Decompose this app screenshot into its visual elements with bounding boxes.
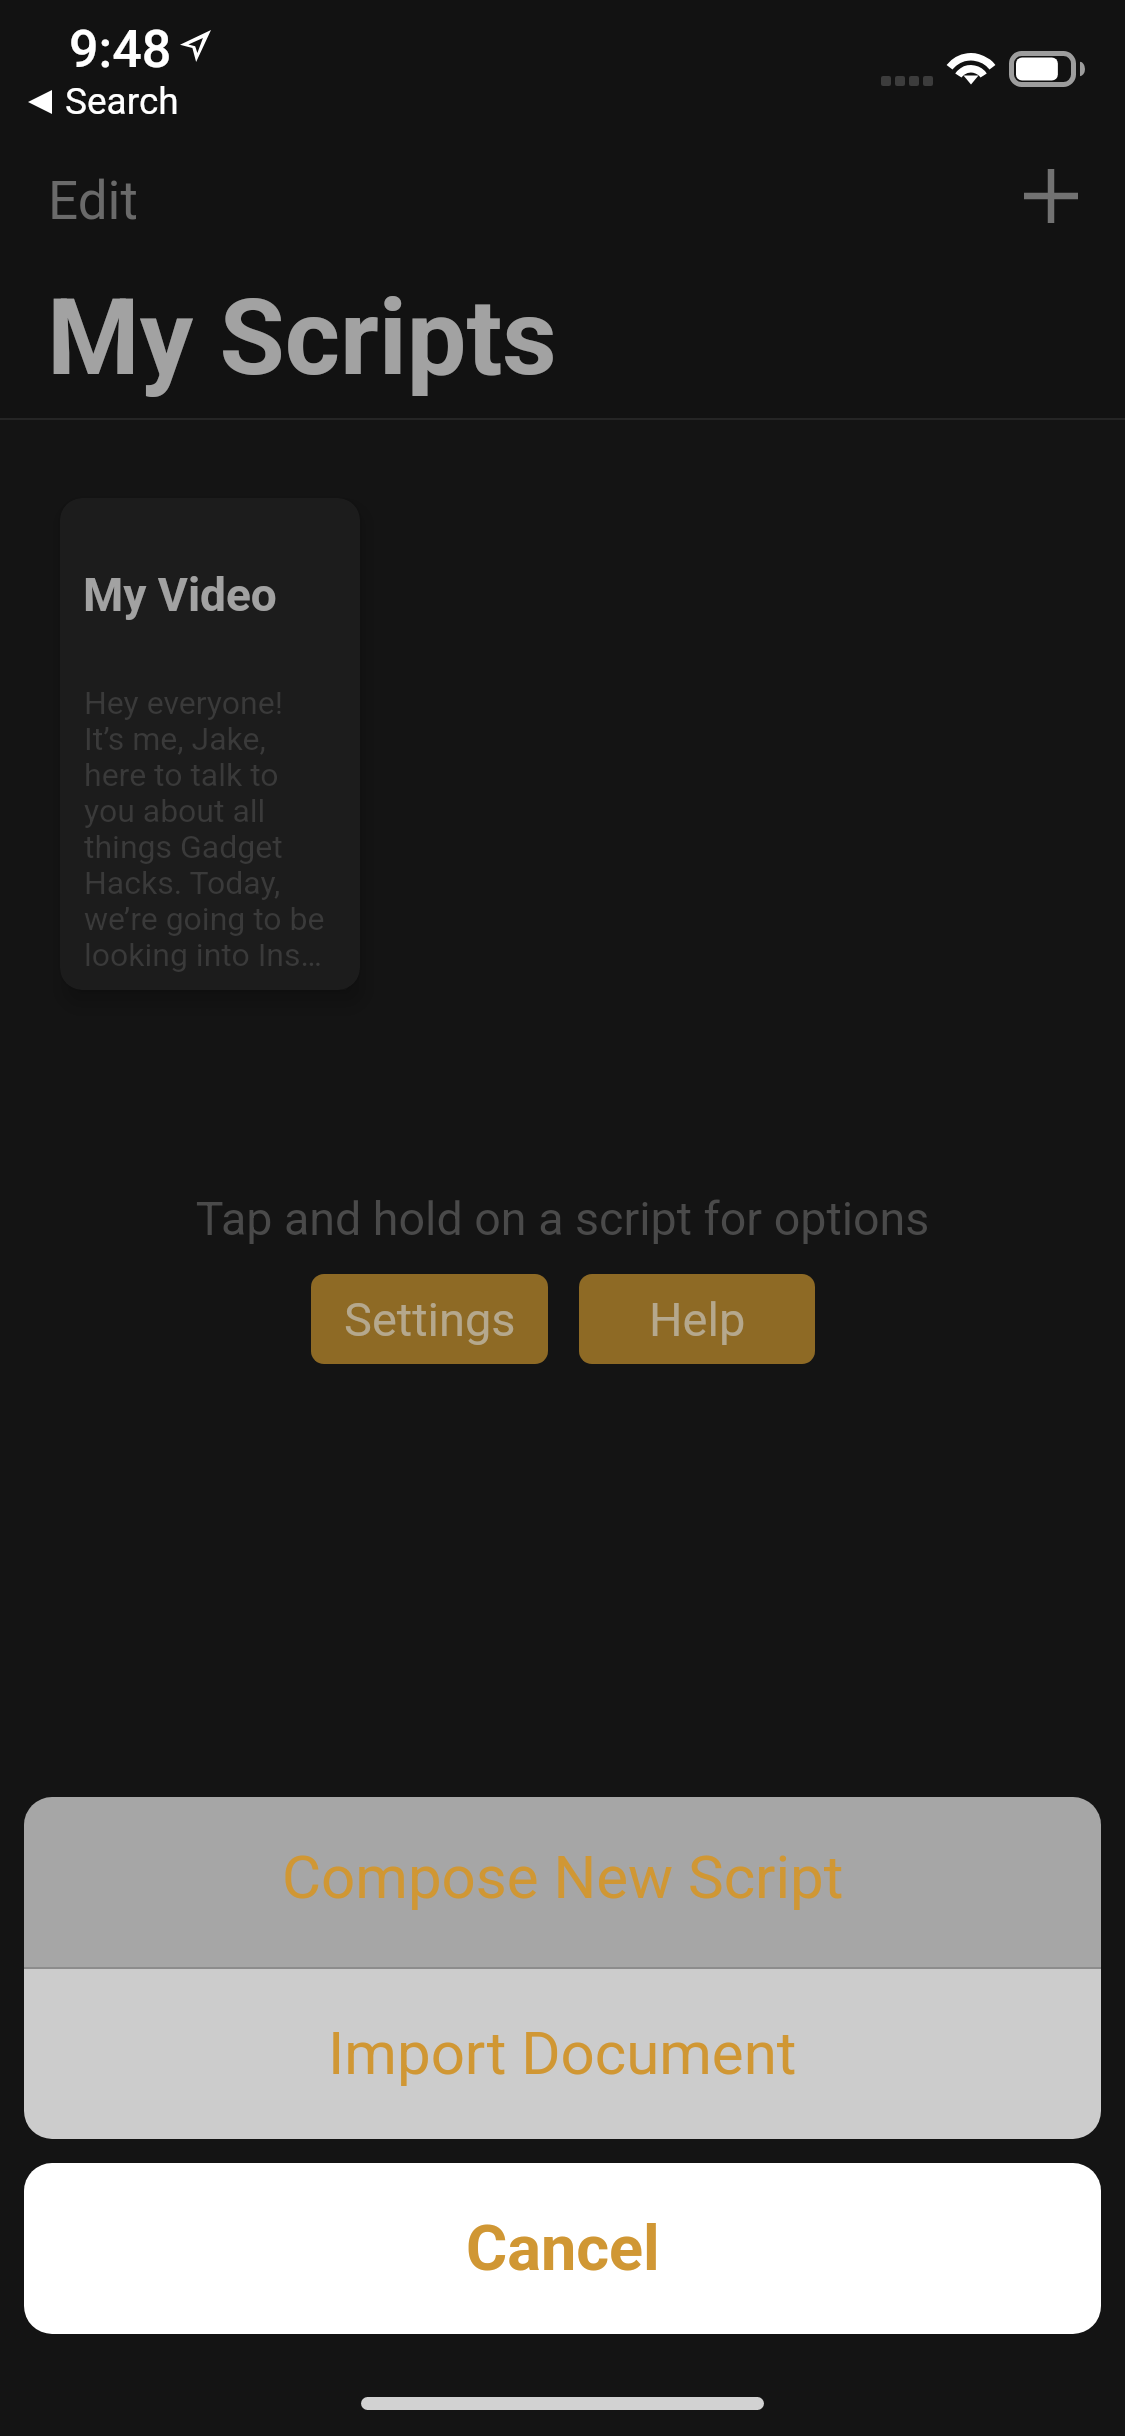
staticText: Import Document (328, 2018, 797, 2088)
staticText: Tap and hold on a script for options (0, 1192, 1125, 1247)
staticText: Compose New Script (282, 1842, 844, 1912)
staticText: My Video (83, 568, 277, 622)
button[interactable]: Compose New Script (24, 1797, 1101, 1967)
staticText: Help (649, 1292, 746, 1347)
button[interactable]: My Video (60, 498, 360, 990)
staticText: Hey everyone! It’s me, Jake, here to tal… (84, 684, 330, 973)
staticText: Edit (48, 170, 138, 232)
button[interactable]: Edit (32, 156, 154, 246)
staticText: 9:48 (69, 19, 172, 80)
button[interactable]: Help (579, 1274, 815, 1364)
staticText: Search (65, 80, 179, 123)
staticText: Settings (344, 1292, 516, 1347)
staticText: Cancel (466, 2212, 660, 2286)
button[interactable]: Import Document (24, 1969, 1101, 2139)
button[interactable]: Search (19, 76, 193, 131)
button[interactable]: Cancel (24, 2163, 1101, 2334)
staticText: My Scripts (47, 276, 557, 400)
button[interactable]: New script (1001, 146, 1101, 246)
button[interactable]: Settings (311, 1274, 548, 1364)
